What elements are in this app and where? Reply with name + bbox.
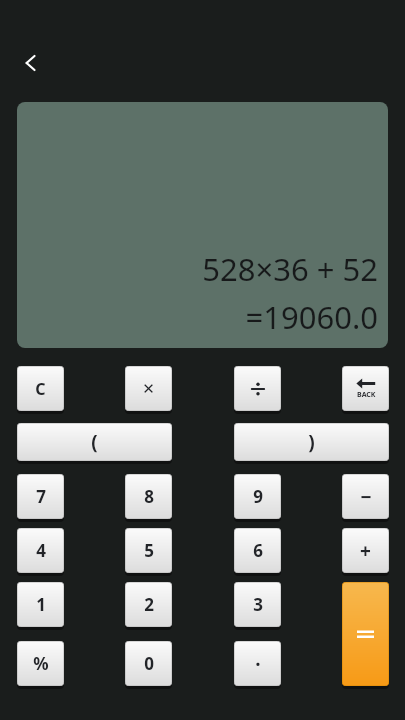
staticText: C (35, 378, 46, 400)
staticText: ✕ (142, 380, 155, 397)
staticText: 4 (36, 539, 46, 562)
staticText: ( (91, 429, 98, 455)
staticText: BACK (357, 390, 376, 400)
button[interactable]: 1 (17, 581, 64, 628)
button[interactable]: ( (17, 422, 172, 462)
button[interactable]: 8 (125, 473, 172, 520)
staticText: 6 (253, 539, 263, 562)
staticText: 528×36 + 52 (202, 248, 378, 290)
staticText: + (360, 538, 371, 564)
button[interactable]: Divide (234, 365, 281, 412)
staticText: − (360, 484, 372, 510)
staticText: 8 (144, 485, 154, 508)
button[interactable]: Backspace (342, 365, 389, 412)
button[interactable]: 5 (125, 527, 172, 574)
button[interactable]: C (17, 365, 64, 412)
staticText: ) (308, 429, 315, 455)
staticText: 3 (253, 593, 263, 616)
button[interactable]: Equals (342, 581, 389, 687)
button[interactable]: 6 (234, 527, 281, 574)
button[interactable]: 4 (17, 527, 64, 574)
button[interactable]: ) (234, 422, 389, 462)
button[interactable]: 7 (17, 473, 64, 520)
button[interactable]: ✕ (125, 365, 172, 412)
button[interactable]: 9 (234, 473, 281, 520)
staticText: =19060.0 (245, 296, 378, 338)
button[interactable]: Decimal point (234, 640, 281, 687)
staticText: 9 (253, 485, 263, 508)
button[interactable]: Plus (342, 527, 389, 574)
button[interactable]: 2 (125, 581, 172, 628)
button[interactable]: Minus (342, 473, 389, 520)
staticText: 5 (144, 539, 154, 562)
button[interactable]: Back (10, 42, 52, 84)
staticText: 2 (144, 593, 154, 616)
staticText: % (33, 652, 49, 675)
staticText: 1 (36, 593, 46, 616)
staticText: 0 (144, 652, 154, 675)
staticText: 7 (36, 485, 46, 508)
button[interactable]: % (17, 640, 64, 687)
button[interactable]: 3 (234, 581, 281, 628)
button[interactable]: 0 (125, 640, 172, 687)
staticText: · (255, 651, 261, 677)
